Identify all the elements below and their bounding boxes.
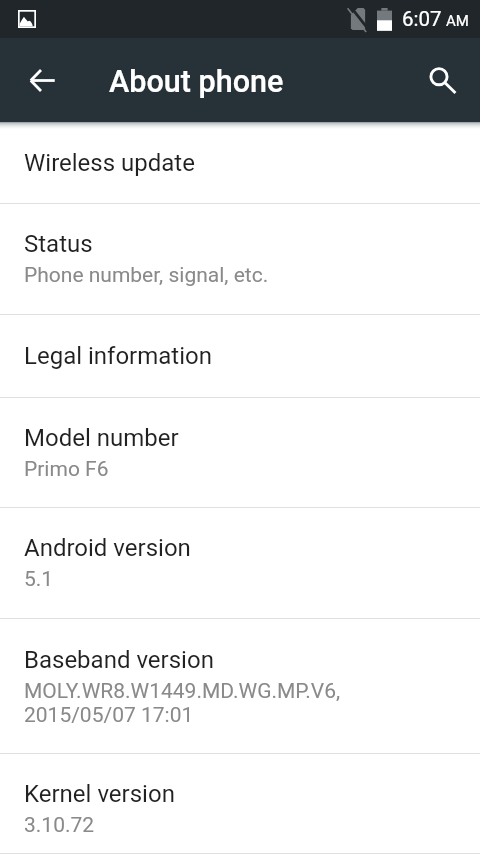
staticText: About phone bbox=[109, 64, 284, 100]
button[interactable]: Baseband version bbox=[0, 619, 480, 754]
button[interactable]: Android version bbox=[0, 508, 480, 619]
button[interactable]: Navigate up bbox=[14, 52, 70, 108]
staticText: Legal information bbox=[24, 342, 212, 370]
staticText: Model number bbox=[24, 424, 179, 452]
staticText: 6:07 bbox=[402, 7, 442, 31]
button[interactable]: Legal information bbox=[0, 315, 480, 398]
staticText: 5.1 bbox=[24, 567, 54, 592]
staticText: Wireless update bbox=[24, 149, 195, 177]
button[interactable]: Wireless update bbox=[0, 122, 480, 204]
button[interactable]: Model number bbox=[0, 398, 480, 508]
staticText: Android version bbox=[24, 534, 191, 562]
staticText: MOLY.WR8.W1449.MD.WG.MP.V6, 2015/05/07 1… bbox=[24, 679, 341, 727]
button[interactable]: Kernel version bbox=[0, 754, 480, 854]
staticText: Status bbox=[24, 230, 93, 258]
staticText: Primo F6 bbox=[24, 457, 109, 482]
button[interactable]: Search bbox=[414, 52, 470, 108]
button[interactable]: Status bbox=[0, 204, 480, 315]
staticText: Phone number, signal, etc. bbox=[24, 263, 269, 288]
staticText: AM bbox=[446, 12, 469, 30]
staticText: Baseband version bbox=[24, 646, 214, 674]
staticText: Kernel version bbox=[24, 780, 175, 808]
staticText: 3.10.72 bbox=[24, 813, 95, 838]
